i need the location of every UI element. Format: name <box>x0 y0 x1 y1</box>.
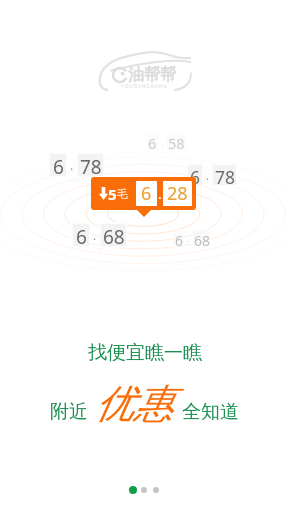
staticText: 68 <box>103 224 125 246</box>
staticText: 6 <box>53 154 64 176</box>
staticText: 6 <box>175 231 183 246</box>
staticText: . <box>93 227 97 243</box>
staticText: . <box>206 168 209 183</box>
staticText: . <box>70 157 74 173</box>
staticText: 5 <box>108 184 117 204</box>
staticText: . <box>187 233 190 245</box>
staticText: YOUBANGBANG <box>121 83 168 90</box>
staticText: 78 <box>215 165 235 185</box>
staticText: 找便宜瞧一瞧 <box>88 341 202 365</box>
staticText: 6 <box>148 134 157 150</box>
staticText: 78 <box>80 154 102 176</box>
staticText: 油帮帮 <box>128 65 176 85</box>
staticText: 58 <box>168 134 185 150</box>
staticText: 6 <box>141 181 152 206</box>
staticText: 6 <box>76 224 87 246</box>
staticText: . <box>158 184 162 203</box>
staticText: 全知道 <box>182 400 239 424</box>
staticText: 优惠 <box>95 379 173 428</box>
staticText: 28 <box>167 181 188 206</box>
staticText: . <box>161 136 164 148</box>
staticText: 68 <box>194 231 210 246</box>
staticText: 附近 <box>50 400 88 424</box>
staticText: 6 <box>190 165 200 185</box>
staticText: 毛 <box>117 187 128 201</box>
